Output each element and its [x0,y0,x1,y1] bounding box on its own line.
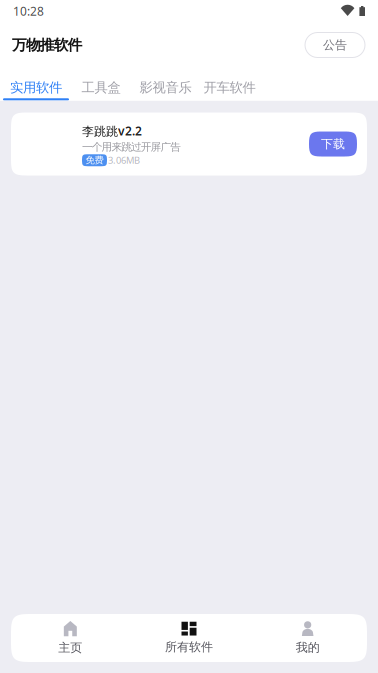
staticText: 万物推软件 [12,36,83,54]
button[interactable]: 我的 [248,614,367,662]
staticText: 10:28 [13,3,44,19]
staticText: 开车软件 [203,79,255,96]
staticText: 所有软件 [165,639,213,654]
staticText: 公告 [323,38,347,52]
button[interactable]: 实用软件 [3,67,69,100]
staticText: 影视音乐 [139,79,191,96]
button[interactable]: 所有软件 [130,614,248,662]
staticText: 3.06MB [108,154,140,166]
button[interactable]: 工具盒 [82,67,120,100]
staticText: 主页 [58,640,82,655]
staticText: 实用软件 [10,79,62,96]
staticText: 李跳跳v2.2 [82,123,142,139]
staticText: 免费 [85,154,103,166]
button[interactable]: 公告 [305,32,365,57]
staticText: 一个用来跳过开屏广告 [82,140,181,153]
button[interactable]: 主页 [11,614,130,662]
staticText: 工具盒 [81,79,120,96]
staticText: 我的 [296,640,320,655]
button[interactable]: 下载 [309,131,357,156]
button[interactable]: 影视音乐 [140,67,191,100]
staticText: 下载 [321,137,345,151]
button[interactable]: 开车软件 [204,67,255,100]
